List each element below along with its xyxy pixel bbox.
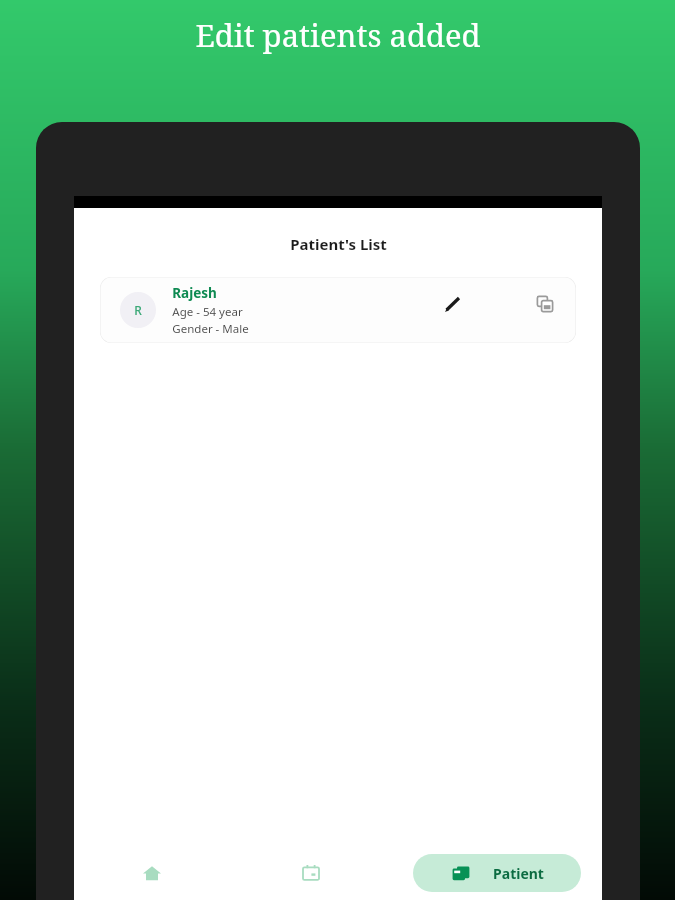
staticText: Gender - Male	[172, 321, 249, 337]
button[interactable]: Home	[74, 846, 230, 900]
staticText: Edit patients added	[195, 14, 481, 56]
staticText: Age - 54 year	[172, 304, 243, 320]
staticText: Patient's List	[290, 234, 387, 254]
button[interactable]: Patient	[413, 854, 581, 892]
button[interactable]: R	[100, 277, 576, 343]
button[interactable]: Copy patient	[528, 287, 562, 321]
button[interactable]: Appointments	[230, 846, 392, 900]
staticText: R	[134, 302, 142, 318]
staticText: Patient	[493, 864, 544, 883]
button[interactable]: Edit	[436, 287, 470, 321]
staticText: Rajesh	[172, 284, 217, 302]
